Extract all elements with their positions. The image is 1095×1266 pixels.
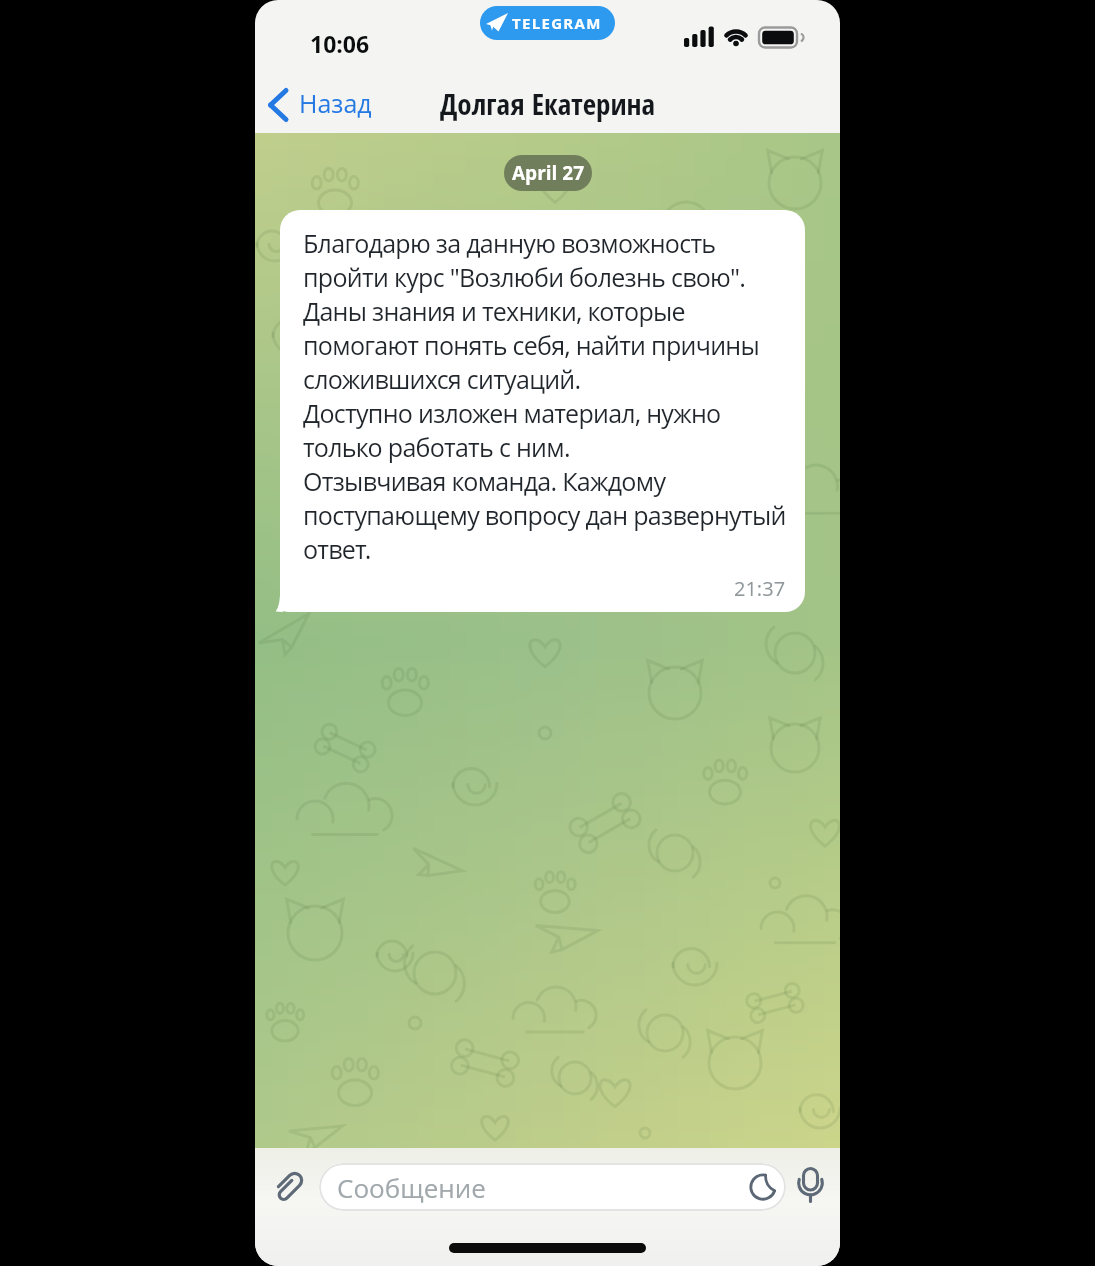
button[interactable]: TELEGRAM (480, 6, 615, 40)
button[interactable]: Благодарю за данную возможность пройти к… (280, 210, 805, 612)
staticText: April 27 (512, 160, 584, 186)
button[interactable] (267, 1152, 307, 1212)
staticText: 21:37 (734, 575, 786, 602)
staticText: Благодарю за данную возможность пройти к… (303, 227, 786, 567)
button[interactable] (749, 1173, 777, 1201)
button[interactable]: Сообщение (319, 1163, 786, 1211)
staticText: TELEGRAM (512, 13, 602, 33)
staticText: Сообщение (337, 1170, 486, 1205)
staticText: 10:06 (310, 28, 370, 59)
staticText: Долгая Екатерина (440, 84, 656, 123)
button[interactable]: Назад (265, 71, 364, 138)
staticText: Назад (299, 86, 372, 120)
button[interactable] (795, 1156, 840, 1218)
